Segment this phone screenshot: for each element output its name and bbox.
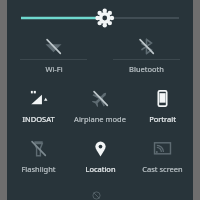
button[interactable]: Bluetooth: [100, 35, 193, 85]
staticText: Wi-Fi: [45, 64, 63, 74]
button[interactable]: Flashlight: [7, 135, 69, 185]
staticText: Airplane mode: [74, 114, 126, 124]
staticText: Portrait: [149, 114, 176, 124]
staticText: Location: [85, 164, 116, 174]
staticText: Bluetooth: [129, 64, 164, 74]
button[interactable]: INDOSAT: [7, 85, 69, 135]
staticText: Flashlight: [21, 164, 56, 174]
button[interactable]: Do not disturb: [69, 185, 131, 200]
button[interactable]: Cast screen: [131, 135, 193, 185]
button[interactable]: Brightness: [7, 0, 193, 35]
button[interactable]: Location: [69, 135, 131, 185]
button[interactable]: Airplane mode: [69, 85, 131, 135]
staticText: INDOSAT: [22, 114, 55, 124]
staticText: Cast screen: [142, 164, 183, 174]
button[interactable]: Portrait: [131, 85, 193, 135]
button[interactable]: Wi-Fi: [7, 35, 100, 85]
